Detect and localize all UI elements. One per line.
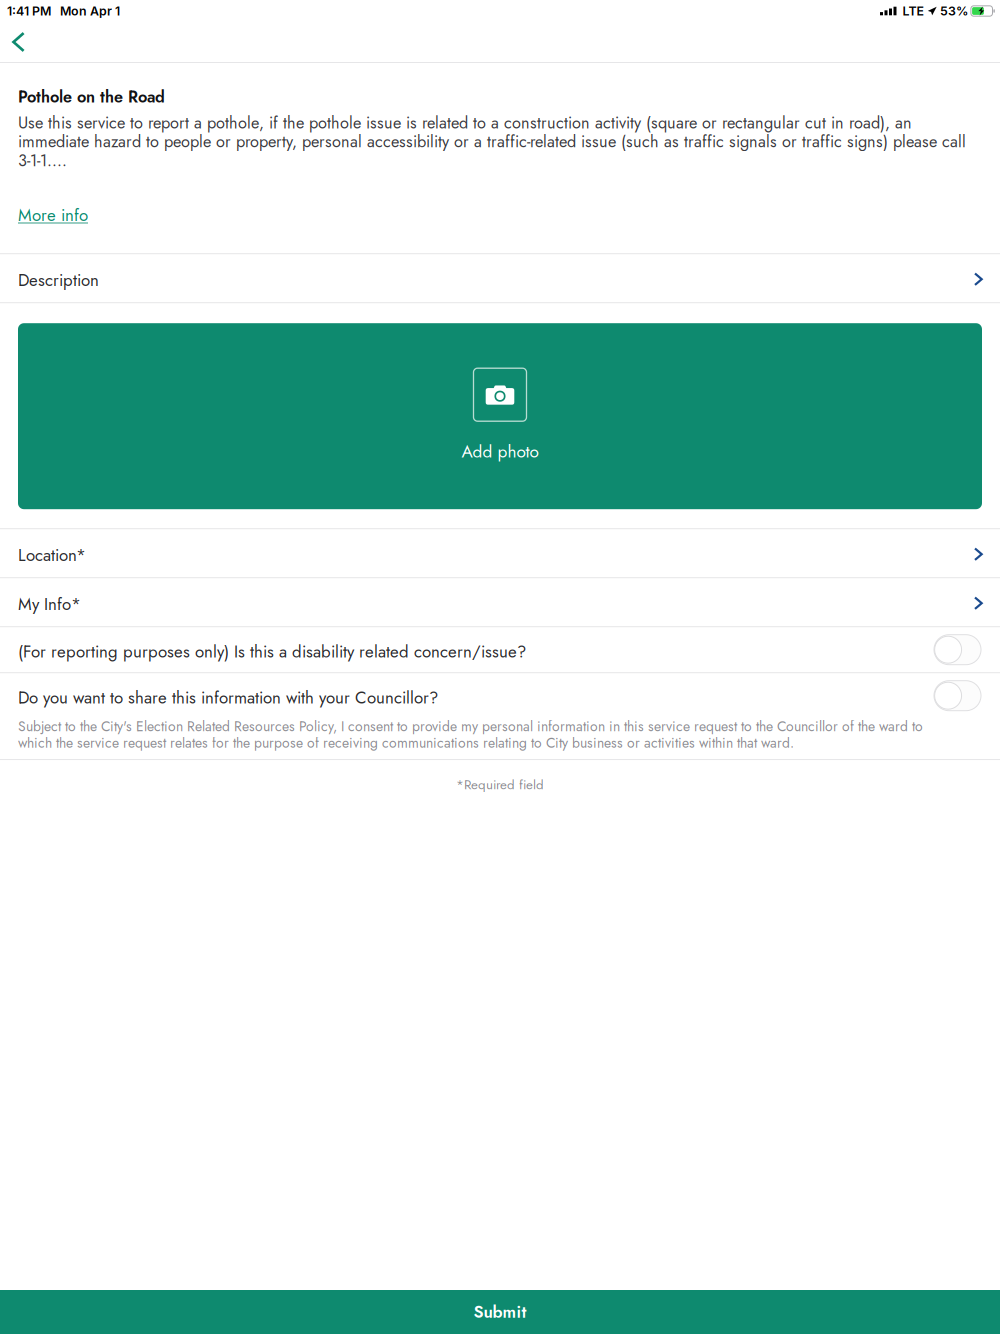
- staticText: My Info*: [18, 592, 81, 616]
- button[interactable]: Do you want to share this information wi…: [934, 681, 981, 711]
- button[interactable]: Description: [0, 254, 1000, 302]
- staticText: (For reporting purposes only) Is this a …: [18, 640, 526, 664]
- button[interactable]: Back: [0, 22, 37, 62]
- staticText: *Required field: [456, 775, 544, 794]
- staticText: Pothole on the Road: [18, 85, 165, 108]
- staticText: Submit: [473, 1300, 526, 1324]
- staticText: Subject to the City's Election Related R…: [18, 718, 923, 751]
- button[interactable]: My Info*: [0, 578, 1000, 626]
- staticText: LTE: [896, 3, 927, 18]
- button[interactable]: Submit: [0, 1290, 1000, 1334]
- button[interactable]: Location*: [0, 529, 1000, 577]
- button[interactable]: (For reporting purposes only) Is this a …: [934, 635, 981, 665]
- button[interactable]: More info: [18, 170, 88, 253]
- button[interactable]: Add photo: [0, 323, 1000, 509]
- staticText: Description: [18, 268, 99, 292]
- staticText: Mon Apr 1: [51, 3, 120, 18]
- staticText: Location*: [18, 543, 86, 567]
- staticText: Do you want to share this information wi…: [18, 686, 438, 710]
- staticText: Add photo: [461, 439, 538, 464]
- staticText: 1:41 PM: [7, 3, 51, 18]
- staticText: Use this service to report a pothole, if…: [18, 113, 966, 170]
- staticText: 53%: [937, 3, 971, 18]
- staticText: More info: [18, 203, 88, 227]
